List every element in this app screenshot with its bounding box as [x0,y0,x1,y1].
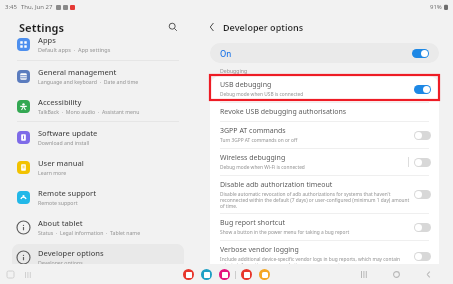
button[interactable]: Apps [0,40,196,60]
button[interactable]: Remote support [12,184,184,210]
button[interactable]: Back [204,19,220,35]
button[interactable]: Home [389,267,403,281]
staticText: Disable adb authorization timeout [220,180,333,190]
button[interactable]: Toggle off [414,252,431,261]
staticText: Status · Legal information · Tablet name [38,229,141,236]
staticText: 91% [430,3,442,11]
button[interactable]: Toggle off [414,158,431,167]
staticText: On [220,48,232,59]
staticText: Learn more [38,169,67,176]
staticText: Show a button in the power menu for taki… [220,229,350,236]
button[interactable]: User manual [12,154,184,180]
staticText: Download and install [38,139,90,146]
staticText: TalkBack · Mono audio · Assistant menu [38,108,140,115]
button[interactable]: App d [241,269,252,280]
button[interactable]: Developer options [12,244,184,270]
staticText: Wireless debugging [220,153,286,163]
button[interactable]: On [210,43,439,63]
button[interactable]: Verbose vendor logging [210,241,439,272]
staticText: Debugging [220,67,248,74]
button[interactable]: Bug report shortcut [210,214,439,240]
staticText: Disable automatic revocation of adb auth… [220,191,414,209]
button[interactable]: General management [12,63,184,89]
button[interactable]: About tablet [12,214,184,240]
staticText: Software update [38,128,98,138]
button[interactable]: Software update [12,124,184,150]
button[interactable]: App b [201,269,212,280]
staticText: Default apps · App settings [38,46,111,53]
staticText: Settings [19,20,65,35]
button[interactable]: 3GPP AT commands [210,122,439,148]
staticText: Apps [38,35,56,45]
button[interactable]: Disable adb authorization timeout [210,176,439,213]
staticText: Revoke USB debugging authorisations [220,107,347,117]
staticText: Debug mode when USB is connected [220,91,304,98]
button[interactable]: Back [421,267,435,281]
button[interactable]: Toggle on [412,49,429,58]
staticText: Bug report shortcut [220,218,286,228]
staticText: Accessibility [38,97,82,107]
button[interactable]: Accessibility [12,93,184,119]
staticText: Developer options [38,259,83,266]
button[interactable]: Toggle off [414,190,431,199]
button[interactable]: Search [164,18,182,36]
button[interactable]: App a [183,269,194,280]
staticText: Developer options [38,248,104,258]
staticText: Turn 3GPP AT commands on or off [220,137,298,144]
staticText: Include additional device-specific vendo… [220,256,414,268]
staticText: Developer options [223,21,304,33]
button[interactable]: Wireless debugging [210,149,439,175]
button[interactable]: App e [259,269,270,280]
staticText: USB debugging [220,80,272,90]
staticText: Language and keyboard · Date and time [38,78,139,85]
staticText: Remote support [38,188,97,198]
button[interactable]: Toggle on [414,85,431,94]
staticText: Verbose vendor logging [220,245,299,255]
button[interactable]: App c [219,269,230,280]
staticText: About tablet [38,218,83,228]
button[interactable]: Revoke USB debugging authorisations [210,103,439,121]
button[interactable]: Toggle off [414,131,431,140]
staticText: Debug mode when Wi-Fi is connected [220,164,305,171]
staticText: Remote support [38,199,78,206]
staticText: User manual [38,158,84,168]
staticText: 3GPP AT commands [220,126,286,136]
button[interactable]: USB debugging [210,76,439,102]
staticText: Thu, Jun 27 [21,3,53,11]
button[interactable]: Toggle off [414,223,431,232]
staticText: 3:45 [5,3,17,11]
staticText: General management [38,67,117,77]
button[interactable]: Recents [357,267,371,281]
